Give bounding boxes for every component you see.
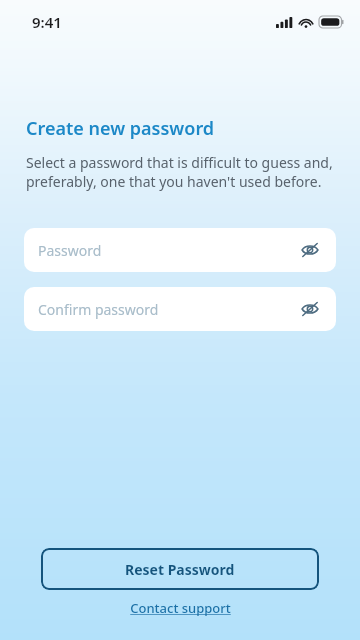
- button[interactable]: Contact support: [122, 596, 239, 620]
- staticText: Select a password that is difficult to g…: [26, 153, 334, 191]
- staticText: Create new password: [26, 116, 215, 141]
- button[interactable]: Confirm password: [24, 287, 336, 331]
- staticText: 9:41: [32, 12, 62, 32]
- button[interactable]: Show password: [296, 295, 324, 323]
- button[interactable]: Password: [24, 228, 336, 272]
- staticText: Password: [38, 241, 102, 260]
- button[interactable]: Reset Password: [41, 548, 319, 590]
- staticText: Confirm password: [38, 300, 159, 319]
- staticText: Contact support: [130, 599, 231, 617]
- staticText: Reset Password: [125, 560, 235, 579]
- button[interactable]: Show password: [296, 236, 324, 264]
